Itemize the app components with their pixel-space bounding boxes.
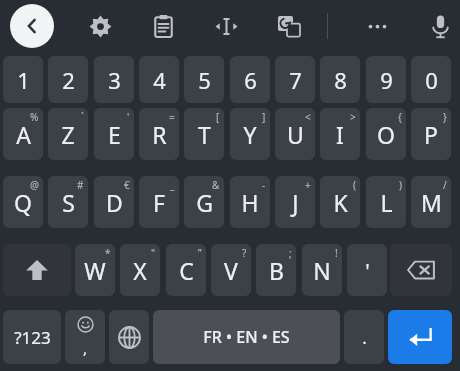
button[interactable]: T <box>184 108 224 160</box>
button[interactable]: O <box>366 108 406 160</box>
button[interactable]: 5 <box>184 56 224 103</box>
button[interactable]: B <box>256 244 296 296</box>
button[interactable]: Emoji <box>65 310 105 364</box>
button[interactable]: U <box>275 108 315 160</box>
button[interactable]: S <box>48 176 88 228</box>
staticText: I <box>336 119 344 150</box>
staticText: ` <box>81 110 84 124</box>
staticText: U <box>287 119 304 150</box>
button[interactable]: Change language <box>109 310 149 364</box>
staticText: E <box>108 119 121 150</box>
button[interactable]: P <box>411 108 451 160</box>
staticText: > <box>350 110 356 124</box>
button[interactable]: Shift <box>3 244 71 296</box>
button[interactable]: E <box>94 108 134 160</box>
staticText: 1 <box>17 65 30 95</box>
button[interactable]: 6 <box>230 56 270 103</box>
button[interactable]: V <box>211 244 251 296</box>
button[interactable]: C <box>166 244 206 296</box>
button[interactable]: Clipboard <box>143 6 183 46</box>
button[interactable]: 0 <box>411 56 451 103</box>
staticText: ?123 <box>14 326 51 349</box>
staticText: V <box>224 255 238 286</box>
staticText: O <box>377 119 395 150</box>
button[interactable]: Translate <box>269 6 309 46</box>
staticText: < <box>305 110 311 124</box>
staticText: C <box>179 255 194 286</box>
staticText: G <box>196 187 213 218</box>
button[interactable]: N <box>302 244 342 296</box>
button[interactable]: 8 <box>320 56 360 103</box>
button[interactable]: 1 <box>3 56 43 103</box>
button[interactable]: K <box>320 176 360 228</box>
button[interactable]: X <box>120 244 160 296</box>
button[interactable]: Voice input <box>420 6 460 46</box>
button[interactable]: I <box>320 108 360 160</box>
staticText: 9 <box>380 65 393 95</box>
button[interactable]: FR • EN • ES <box>153 310 340 364</box>
button[interactable]: D <box>94 176 134 228</box>
staticText: - <box>262 178 266 192</box>
button[interactable]: Back <box>10 4 54 48</box>
staticText: ' <box>127 110 130 124</box>
staticText: 2 <box>62 65 75 95</box>
staticText: } <box>443 110 447 124</box>
button[interactable]: F <box>139 176 179 228</box>
button[interactable]: J <box>275 176 315 228</box>
button[interactable]: Q <box>3 176 43 228</box>
staticText: F <box>153 187 165 218</box>
staticText: H <box>241 187 259 218</box>
button[interactable]: More options <box>357 6 397 46</box>
staticText: ? <box>242 246 247 260</box>
staticText: ) <box>399 178 402 192</box>
button[interactable]: L <box>366 176 406 228</box>
staticText: X <box>133 255 147 286</box>
button[interactable]: M <box>411 176 451 228</box>
button[interactable]: Settings <box>80 6 120 46</box>
button[interactable]: . <box>344 310 384 364</box>
button[interactable]: G <box>184 176 224 228</box>
staticText: Y <box>243 119 257 150</box>
staticText: L <box>380 187 393 218</box>
staticText: Q <box>14 187 32 218</box>
staticText: 0 <box>425 65 438 95</box>
staticText: 4 <box>153 65 166 95</box>
button[interactable]: 4 <box>139 56 179 103</box>
staticText: # <box>77 178 84 192</box>
button[interactable]: H <box>230 176 270 228</box>
staticText: R <box>152 119 167 150</box>
staticText: 8 <box>334 65 347 95</box>
staticText: = <box>169 110 175 124</box>
button[interactable]: Enter <box>388 310 452 364</box>
staticText: ' <box>365 257 370 284</box>
staticText: @ <box>30 178 39 192</box>
button[interactable]: 2 <box>48 56 88 103</box>
button[interactable]: A <box>3 108 43 160</box>
staticText: ( <box>353 178 356 192</box>
button[interactable]: Backspace <box>390 244 452 296</box>
button[interactable]: ?123 <box>3 310 61 364</box>
button[interactable]: 7 <box>275 56 315 103</box>
staticText: € <box>124 178 130 192</box>
staticText: [ <box>216 110 220 124</box>
button[interactable]: Y <box>230 108 270 160</box>
button[interactable]: W <box>75 244 115 296</box>
button[interactable]: 9 <box>366 56 406 103</box>
staticText: . <box>362 326 367 349</box>
staticText: , <box>83 338 88 358</box>
staticText: 5 <box>198 65 211 95</box>
button[interactable]: ' <box>347 244 387 296</box>
staticText: { <box>398 110 402 124</box>
staticText: % <box>30 110 39 124</box>
staticText: 3 <box>108 65 121 95</box>
staticText: & <box>212 178 220 192</box>
staticText: P <box>424 119 438 150</box>
button[interactable]: 3 <box>94 56 134 103</box>
staticText: J <box>292 187 299 218</box>
button[interactable]: R <box>139 108 179 160</box>
staticText: * <box>105 246 111 260</box>
staticText: S <box>62 187 75 218</box>
staticText: ] <box>262 110 266 124</box>
button[interactable]: Move cursor <box>206 6 246 46</box>
button[interactable]: Z <box>48 108 88 160</box>
